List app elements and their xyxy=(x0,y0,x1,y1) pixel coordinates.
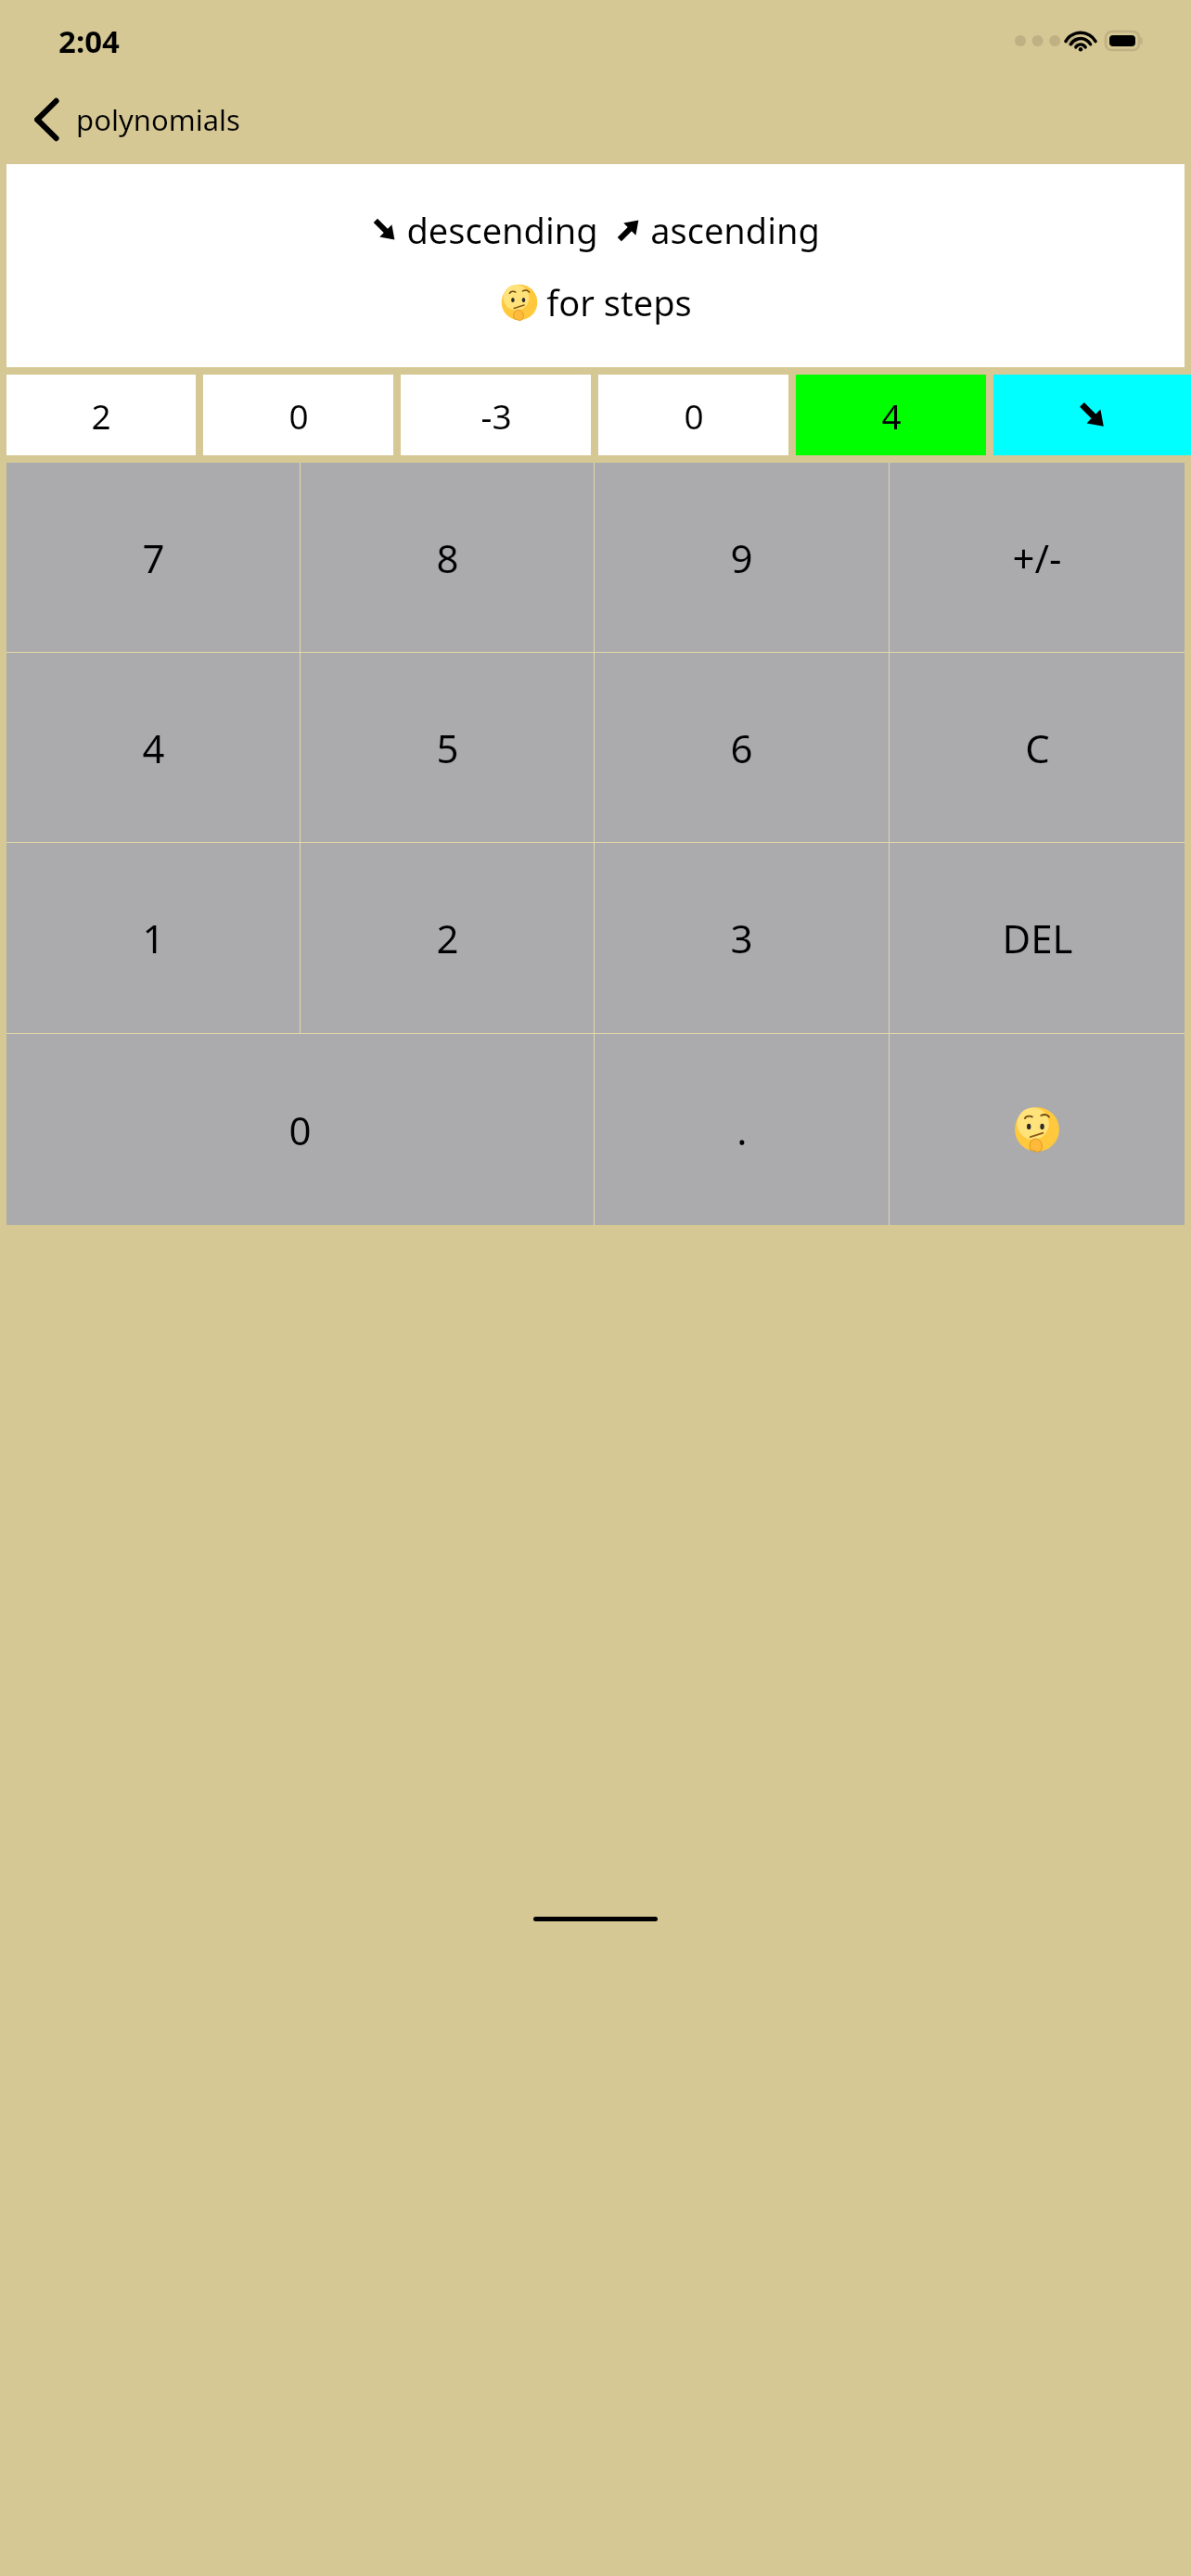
staticText: for steps xyxy=(546,278,692,326)
staticText: C xyxy=(1025,721,1050,774)
button[interactable]: +/- xyxy=(890,463,1185,652)
staticText: . xyxy=(736,1103,748,1156)
button[interactable]: C xyxy=(890,653,1185,842)
button[interactable]: 3 xyxy=(595,843,889,1033)
button[interactable]: DEL xyxy=(890,843,1185,1033)
button[interactable]: descending xyxy=(371,206,598,254)
staticText: 0 xyxy=(288,392,309,439)
button[interactable]: 4 xyxy=(796,375,986,455)
staticText: 3 xyxy=(730,912,753,964)
button[interactable]: 8 xyxy=(301,463,594,652)
button[interactable]: 2 xyxy=(6,375,196,455)
staticText: 8 xyxy=(436,531,459,584)
button[interactable]: ascending xyxy=(615,206,820,254)
staticText: DEL xyxy=(1002,912,1073,964)
staticText: 2 xyxy=(436,912,459,964)
button[interactable]: 7 xyxy=(6,463,300,652)
button[interactable]: for steps xyxy=(500,278,692,326)
button[interactable]: 0 xyxy=(203,375,393,455)
staticText: 4 xyxy=(881,392,902,439)
staticText: 4 xyxy=(142,721,165,774)
staticText: 2 xyxy=(91,392,111,439)
button[interactable]: 4 xyxy=(6,653,300,842)
button[interactable]: Back xyxy=(0,82,1191,158)
staticText: 0 xyxy=(288,1103,312,1156)
button[interactable]: 6 xyxy=(595,653,889,842)
button[interactable]: 9 xyxy=(595,463,889,652)
staticText: +/- xyxy=(1012,531,1062,584)
button[interactable]: 0 xyxy=(6,1034,594,1225)
staticText: polynomials xyxy=(76,100,240,139)
staticText: 0 xyxy=(684,392,704,439)
staticText: descending xyxy=(406,206,598,254)
button[interactable]: Descending order xyxy=(993,375,1191,455)
staticText: -3 xyxy=(480,392,512,439)
staticText: 1 xyxy=(142,912,165,964)
staticText: ascending xyxy=(650,206,820,254)
staticText: 2:04 xyxy=(58,20,120,62)
button[interactable]: 5 xyxy=(301,653,594,842)
button[interactable]: 0 xyxy=(598,375,788,455)
button[interactable]: 2 xyxy=(301,843,594,1033)
other: Back xyxy=(33,98,61,141)
staticText: 5 xyxy=(436,721,459,774)
staticText: 9 xyxy=(730,531,753,584)
staticText: 7 xyxy=(142,531,165,584)
staticText: 6 xyxy=(730,721,753,774)
button[interactable]: 1 xyxy=(6,843,300,1033)
button[interactable]: -3 xyxy=(401,375,591,455)
button[interactable]: Show steps xyxy=(890,1034,1185,1225)
